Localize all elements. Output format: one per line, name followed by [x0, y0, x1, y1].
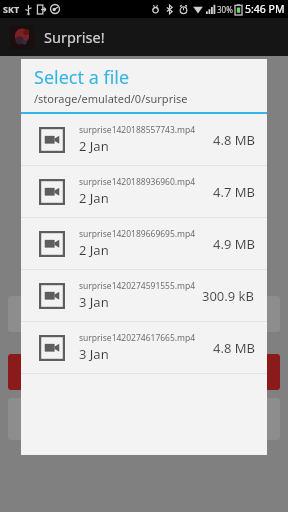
staticText: surprise1420188557743.mp4	[79, 124, 196, 136]
staticText: 2 Jan	[79, 189, 109, 207]
staticText: surprise1420188936960.mp4	[79, 176, 196, 188]
staticText: SKT	[3, 3, 20, 15]
staticText: 300.9 kB	[202, 287, 255, 305]
staticText: 4.7 MB	[213, 183, 255, 201]
button[interactable]: surprise1420189669695.mp4	[21, 218, 267, 270]
staticText: 3 Jan	[79, 345, 109, 363]
staticText: 4.8 MB	[213, 131, 255, 149]
button[interactable]: surprise1420274591555.mp4	[21, 270, 267, 322]
staticText: Select a file	[34, 65, 130, 90]
staticText: surprise1420274591555.mp4	[79, 280, 196, 292]
staticText: 2 Jan	[79, 241, 109, 259]
button[interactable]: surprise1420188936960.mp4	[21, 166, 267, 218]
button[interactable]	[8, 296, 280, 332]
staticText: 2 Jan	[79, 137, 109, 155]
staticText: 3 Jan	[79, 293, 109, 311]
staticText: surprise1420189669695.mp4	[79, 228, 196, 240]
button[interactable]: App icon	[10, 25, 34, 49]
button[interactable]: surprise1420274617665.mp4	[21, 322, 267, 374]
staticText: 4.8 MB	[213, 339, 255, 357]
staticText: /storage/emulated/0/surprise	[34, 91, 188, 106]
staticText: Surprise!	[44, 27, 105, 47]
staticText: 4.9 MB	[213, 235, 255, 253]
button[interactable]	[8, 354, 280, 390]
button[interactable]: surprise1420188557743.mp4	[21, 114, 267, 166]
button[interactable]	[8, 398, 280, 440]
staticText: 5:46 PM	[245, 2, 285, 16]
staticText: surprise1420274617665.mp4	[79, 332, 196, 344]
staticText: 30%	[217, 4, 233, 15]
